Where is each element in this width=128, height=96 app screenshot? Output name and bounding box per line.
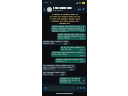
button[interactable] (60, 46, 86, 51)
staticText: 9:41 (44, 1, 49, 4)
button[interactable]: Video call (77, 7, 82, 12)
button[interactable] (55, 58, 86, 63)
button[interactable] (51, 51, 86, 57)
button[interactable]: Attach (76, 86, 80, 90)
button[interactable] (59, 77, 86, 84)
button[interactable]: Call (82, 7, 87, 12)
button[interactable]: Scroll to bottom (80, 77, 86, 83)
button[interactable]: Camera (79, 86, 83, 90)
button[interactable] (42, 40, 70, 45)
button[interactable] (42, 64, 76, 71)
button[interactable]: Back (42, 5, 47, 13)
button[interactable] (57, 33, 86, 40)
button[interactable]: Emoji (43, 86, 47, 90)
button[interactable] (42, 71, 67, 76)
button[interactable]: Voice message (82, 86, 86, 90)
button[interactable] (51, 25, 86, 32)
